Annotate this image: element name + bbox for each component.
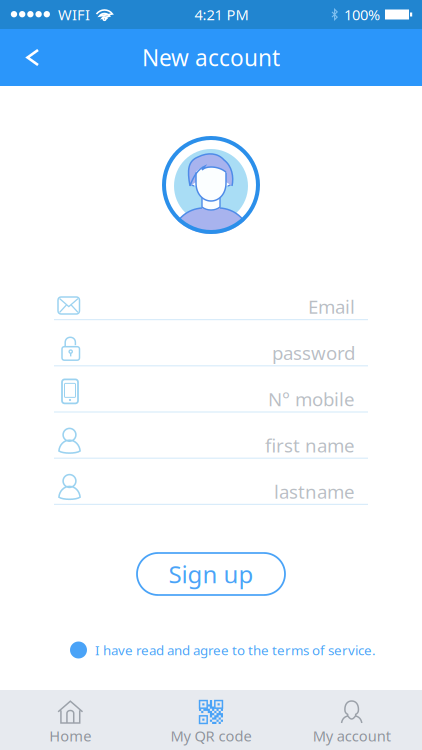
staticText: WIFI [58, 5, 90, 24]
staticText: password [272, 340, 355, 365]
staticText: first name [265, 433, 355, 458]
staticText: 4:21 PM [194, 5, 248, 24]
staticText: New account [142, 42, 280, 72]
button[interactable]: My account [281, 690, 422, 750]
button[interactable]: I have read and agree to the terms of se… [70, 639, 376, 661]
staticText: Home [49, 726, 91, 745]
staticText: N° mobile [268, 387, 355, 411]
staticText: Sign up [168, 558, 253, 590]
staticText: My QR code [170, 726, 251, 745]
button[interactable]: Sign up [137, 553, 285, 595]
staticText: lastname [274, 479, 355, 504]
staticText: My account [313, 726, 391, 745]
button[interactable]: Home [0, 690, 141, 750]
staticText: I have read and agree to the terms of se… [95, 641, 376, 659]
staticText: Email [308, 294, 355, 319]
staticText: 100% [344, 5, 380, 24]
button[interactable]: Back [0, 29, 56, 86]
button[interactable]: My QR code [141, 690, 281, 750]
